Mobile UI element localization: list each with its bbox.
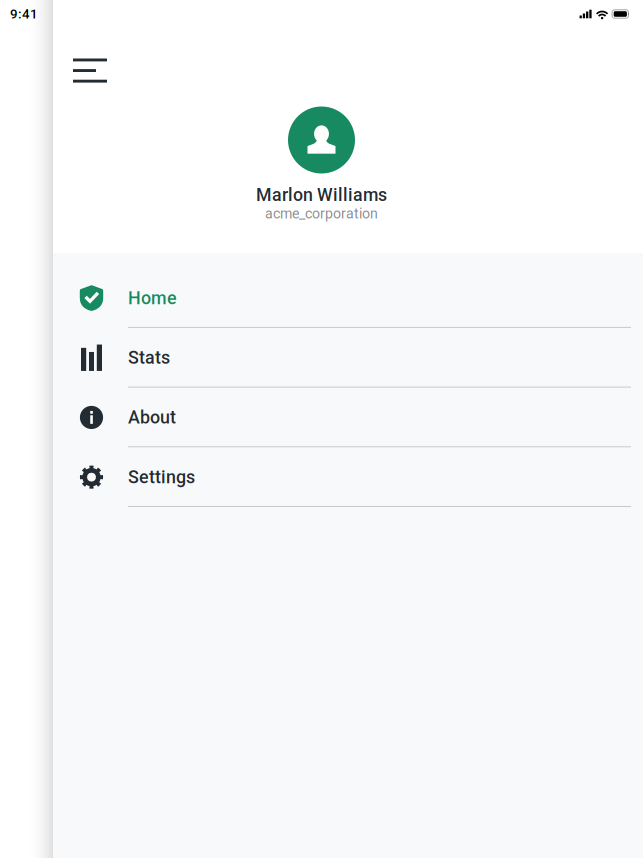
button[interactable]: Home [53,268,643,328]
staticText: Marlon Williams [256,184,387,205]
button[interactable]: Menu [53,44,121,97]
staticText: acme_corporation [265,205,378,222]
button[interactable]: Settings [53,447,643,507]
staticText: Home [128,288,177,308]
staticText: Stats [128,347,170,368]
staticText: Settings [128,467,195,488]
staticText: 9:41 [10,6,38,22]
button[interactable]: Stats [53,328,643,388]
button[interactable]: About [53,388,643,447]
staticText: About [128,407,176,428]
